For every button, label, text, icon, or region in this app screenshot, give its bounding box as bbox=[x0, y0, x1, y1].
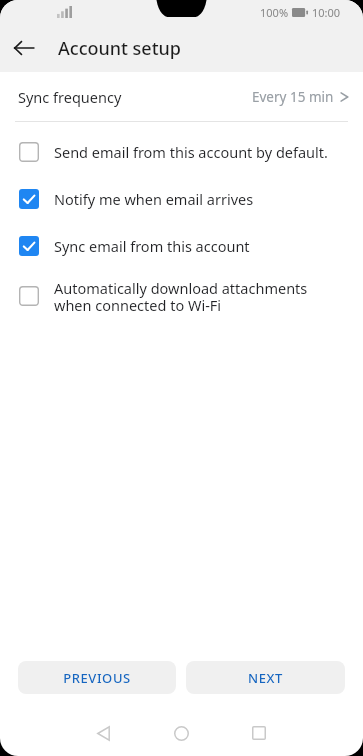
staticText: Sync email from this account bbox=[54, 236, 250, 256]
staticText: Automatically download attachments when … bbox=[54, 278, 308, 315]
button[interactable]: Sync frequency bbox=[0, 72, 363, 121]
staticText: 10:00 bbox=[312, 5, 341, 20]
button[interactable]: Back bbox=[79, 710, 127, 756]
staticText: Every 15 min bbox=[252, 88, 334, 106]
staticText: Send email from this account by default. bbox=[54, 142, 328, 162]
button[interactable]: Notify me when email arrives bbox=[0, 175, 363, 222]
staticText: 100% bbox=[260, 5, 289, 20]
button[interactable]: Back bbox=[0, 24, 48, 72]
button[interactable]: Send email from this account by default. bbox=[0, 128, 363, 175]
button[interactable]: PREVIOUS bbox=[18, 661, 176, 694]
button[interactable]: NEXT bbox=[186, 661, 345, 694]
button[interactable]: Automatically download attachments when … bbox=[0, 269, 363, 323]
button[interactable]: Sync email from this account bbox=[0, 222, 363, 269]
staticText: Sync frequency bbox=[18, 87, 122, 107]
button[interactable]: Home bbox=[157, 710, 205, 756]
staticText: Account setup bbox=[58, 36, 182, 61]
staticText: PREVIOUS bbox=[63, 669, 131, 687]
button[interactable]: Recent apps bbox=[235, 710, 283, 756]
staticText: Notify me when email arrives bbox=[54, 189, 254, 209]
staticText: NEXT bbox=[248, 669, 283, 687]
